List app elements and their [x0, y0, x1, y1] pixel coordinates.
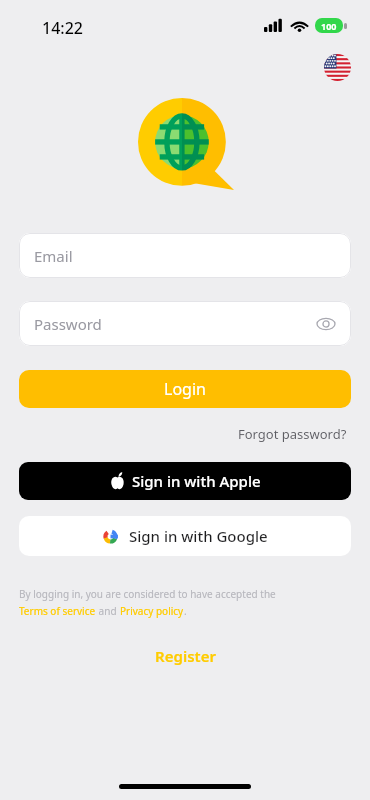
- button[interactable]: Email: [19, 233, 351, 278]
- staticText: Terms of service: [19, 604, 96, 618]
- button[interactable]: Password: [19, 301, 351, 346]
- staticText: .: [184, 604, 187, 618]
- button[interactable]: Change language: [324, 54, 351, 81]
- button[interactable]: Privacy policy: [120, 604, 184, 618]
- staticText: Sign in with Apple: [132, 471, 261, 491]
- button[interactable]: Register: [145, 643, 226, 669]
- staticText: and: [96, 604, 120, 618]
- button[interactable]: Forgot password?: [234, 421, 351, 447]
- staticText: Privacy policy: [120, 604, 184, 618]
- button[interactable]: Show password: [314, 312, 338, 336]
- staticText: Forgot password?: [238, 425, 347, 443]
- staticText: By logging in, you are considered to hav…: [19, 587, 276, 601]
- staticText: Sign in with Google: [129, 526, 268, 546]
- staticText: Password: [34, 314, 102, 334]
- staticText: 100: [321, 20, 337, 32]
- staticText: 14:22: [42, 17, 83, 39]
- button[interactable]: Sign in with Apple: [19, 462, 351, 500]
- staticText: Login: [164, 378, 206, 400]
- staticText: Email: [34, 246, 73, 266]
- staticText: Register: [155, 646, 216, 666]
- button[interactable]: Login: [19, 370, 351, 408]
- button[interactable]: Sign in with Google: [19, 516, 351, 556]
- button[interactable]: Terms of service: [19, 604, 96, 618]
